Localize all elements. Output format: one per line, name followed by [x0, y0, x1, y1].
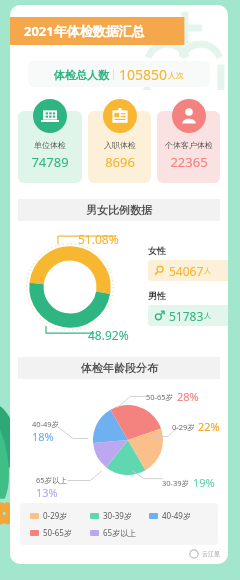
button[interactable]: 2021年体检数据汇总	[10, 17, 228, 45]
button[interactable]: 40-49岁	[149, 510, 208, 521]
other: Male	[154, 310, 165, 321]
staticText: 单位体检	[34, 140, 66, 150]
button[interactable]: 65岁以上	[90, 527, 149, 538]
button[interactable]: 体检总人数	[28, 61, 210, 87]
staticText: 男女比例数据	[86, 203, 152, 217]
staticText: 女性	[148, 245, 166, 256]
staticText: 74789	[31, 153, 69, 171]
staticText: 男性	[148, 290, 166, 301]
staticText: 28%	[177, 389, 199, 404]
staticText: 入职体检	[104, 140, 136, 150]
staticText: 40-49岁	[32, 419, 60, 429]
staticText: 0-29岁	[172, 422, 195, 432]
staticText: 50-65岁	[43, 527, 72, 538]
staticText: 体检年龄段分布	[81, 361, 158, 375]
staticText: 40-49岁	[162, 510, 191, 521]
staticText: 人	[204, 266, 211, 275]
button[interactable]: 入职体检	[88, 99, 151, 183]
staticText: 30-39岁	[162, 478, 190, 488]
button[interactable]: 个体客户体检	[157, 99, 220, 183]
staticText: 65岁以上	[103, 527, 137, 538]
staticText: 51.08%	[78, 231, 119, 247]
staticText: 人	[204, 311, 211, 320]
staticText: 18%	[32, 429, 54, 444]
staticText: 云江昱	[202, 550, 220, 558]
staticText: 个体客户体检	[165, 140, 213, 150]
staticText: 54067	[169, 263, 204, 279]
staticText: 13%	[36, 485, 58, 500]
staticText: 48.92%	[88, 327, 129, 343]
staticText: 19%	[193, 475, 215, 490]
staticText: 0-29岁	[43, 510, 68, 521]
staticText: 人次	[168, 70, 184, 80]
button[interactable]: 0-29岁	[30, 510, 90, 521]
staticText: 65岁以上	[36, 475, 68, 485]
staticText: 体检总人数	[54, 68, 109, 82]
staticText: 105850	[119, 65, 168, 84]
button[interactable]: 50-65岁	[30, 527, 90, 538]
staticText: 50-65岁	[146, 392, 174, 402]
staticText: 51783	[169, 308, 204, 324]
other: Female	[154, 265, 165, 276]
staticText: 22%	[198, 419, 220, 434]
button[interactable]: 30-39岁	[90, 510, 149, 521]
staticText: 2021年体检数据汇总	[24, 22, 145, 40]
staticText: 30-39岁	[103, 510, 132, 521]
button[interactable]: 单位体检	[18, 99, 82, 183]
button[interactable]: Female	[148, 260, 228, 281]
button[interactable]: Male	[148, 305, 228, 326]
staticText: 22365	[170, 153, 208, 171]
staticText: 8696	[105, 153, 135, 171]
